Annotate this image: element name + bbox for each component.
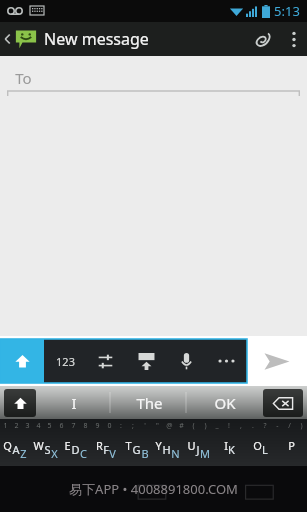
button[interactable]: Settings (86, 339, 124, 383)
button[interactable]: I (36, 386, 111, 419)
staticText: S (44, 442, 51, 457)
staticText: U (187, 438, 196, 453)
staticText: _ (215, 421, 219, 431)
staticText: Y (155, 438, 162, 453)
button[interactable]: I (214, 438, 245, 461)
staticText: X (51, 446, 58, 461)
button[interactable]: 易下APP • 4008891800.COM (0, 466, 307, 512)
staticText: 4 (36, 421, 41, 431)
staticText: I (71, 393, 77, 413)
staticText: 易下APP • 4008891800.COM (69, 480, 238, 498)
staticText: 8 (83, 421, 88, 431)
staticText: G (132, 442, 141, 457)
staticText: T (125, 438, 132, 453)
staticText: F (103, 442, 109, 457)
staticText: # (179, 421, 184, 431)
button[interactable]: More options (281, 22, 307, 56)
staticText: J (196, 442, 200, 457)
staticText: O (253, 438, 262, 453)
staticText: K (228, 442, 235, 457)
staticText: New message (44, 28, 149, 50)
staticText: ; (132, 421, 134, 431)
staticText: N (171, 446, 180, 461)
staticText: Z (20, 446, 27, 461)
button[interactable]: Shift (4, 389, 36, 417)
button[interactable]: To (7, 66, 300, 90)
staticText: 6 (59, 421, 64, 431)
button[interactable]: P (276, 438, 307, 461)
staticText: , (240, 421, 242, 431)
button[interactable]: Attach (245, 22, 281, 56)
staticText: 7 (71, 421, 76, 431)
button[interactable]: W (30, 438, 60, 461)
button[interactable]: The (111, 386, 187, 419)
button[interactable]: E (60, 438, 90, 461)
button[interactable]: R (90, 438, 121, 461)
staticText: C (80, 446, 87, 461)
staticText: L (262, 442, 268, 457)
staticText: A (12, 442, 20, 457)
staticText: 1 (3, 421, 8, 431)
staticText: W (33, 438, 44, 453)
staticText: P (288, 438, 295, 453)
staticText: ' (144, 421, 146, 431)
staticText: / (288, 421, 291, 431)
button[interactable]: Q (0, 438, 30, 461)
staticText: 0 (107, 421, 112, 431)
staticText: ( (192, 421, 195, 431)
staticText: B (141, 446, 149, 461)
button[interactable]: 123 (46, 339, 84, 383)
staticText: @ (166, 421, 173, 431)
staticText: 2 (14, 421, 19, 431)
staticText: H (162, 442, 171, 457)
staticText: ! (228, 421, 230, 431)
button[interactable]: O (245, 438, 276, 461)
staticText: R (96, 438, 103, 453)
staticText: " (156, 421, 159, 431)
button[interactable]: Voice input (167, 339, 205, 383)
staticText: V (109, 446, 116, 461)
button[interactable]: Send (247, 336, 307, 386)
button[interactable]: More (207, 339, 245, 383)
staticText: OK (214, 393, 236, 413)
staticText: 9 (95, 421, 100, 431)
staticText: ? (263, 421, 267, 431)
staticText: . (252, 421, 254, 431)
staticText: 123 (56, 354, 75, 369)
staticText: ) (300, 421, 303, 431)
button[interactable]: Backspace (263, 389, 303, 417)
staticText: ) (204, 421, 207, 431)
staticText: E (64, 438, 71, 453)
staticText: 5:13 (274, 2, 300, 20)
staticText: D (71, 442, 80, 457)
staticText: The (136, 393, 163, 413)
button[interactable]: Switch keyboard (127, 339, 165, 383)
button[interactable]: U (183, 438, 214, 461)
button[interactable]: T (121, 438, 152, 461)
button[interactable]: OK (187, 386, 263, 419)
staticText: 5 (47, 421, 52, 431)
button[interactable]: Shift (0, 339, 44, 383)
button[interactable]: Back (0, 22, 155, 56)
staticText: Q (3, 438, 12, 453)
staticText: M (200, 446, 210, 461)
other: Back (3, 31, 12, 47)
staticText: - (276, 421, 279, 431)
staticText: 3 (25, 421, 30, 431)
button[interactable]: Y (152, 438, 183, 461)
staticText: To (15, 68, 32, 88)
staticText: : (120, 421, 122, 431)
staticText: I (224, 438, 228, 453)
